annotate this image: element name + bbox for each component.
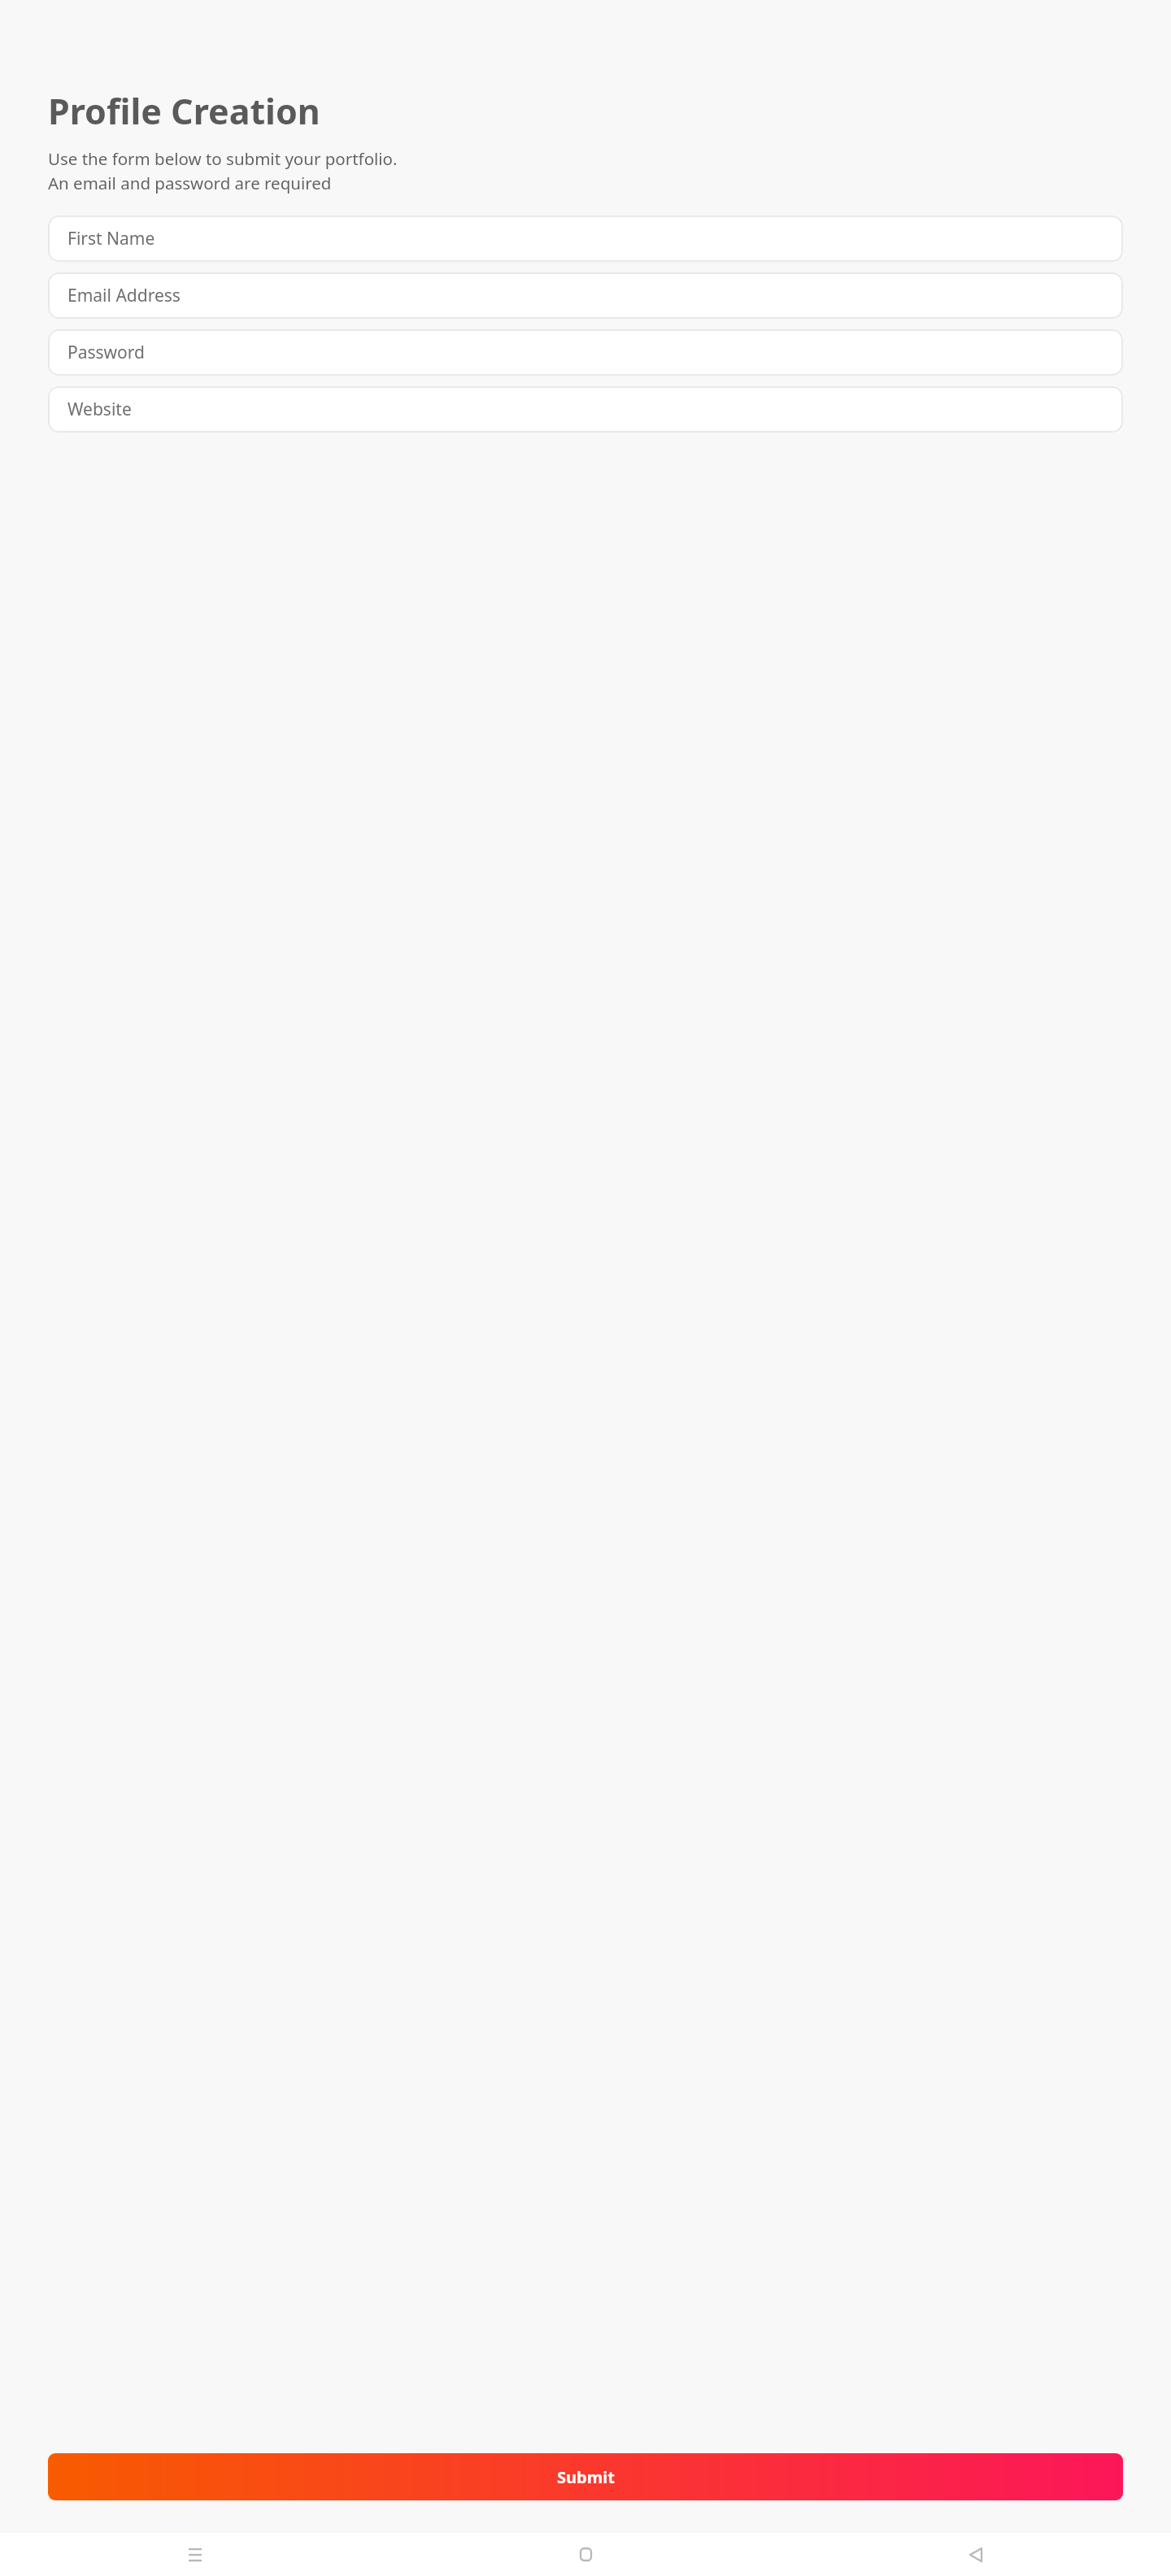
button[interactable]: Submit <box>48 2453 1123 2500</box>
staticText: Website <box>67 398 132 421</box>
button[interactable]: Recent apps <box>0 2533 390 2576</box>
staticText: Password <box>67 341 145 364</box>
button[interactable]: Email Address <box>48 272 1123 319</box>
staticText: Submit <box>557 2466 615 2488</box>
staticText: Use the form below to submit your portfo… <box>48 147 398 194</box>
staticText: Email Address <box>67 284 181 307</box>
button[interactable]: Password <box>48 329 1123 376</box>
button[interactable]: Home <box>390 2533 781 2576</box>
button[interactable]: Website <box>48 386 1123 433</box>
staticText: First Name <box>67 227 155 250</box>
staticText: Profile Creation <box>48 87 320 135</box>
button[interactable]: First Name <box>48 215 1123 262</box>
button[interactable]: Back <box>781 2533 1171 2576</box>
